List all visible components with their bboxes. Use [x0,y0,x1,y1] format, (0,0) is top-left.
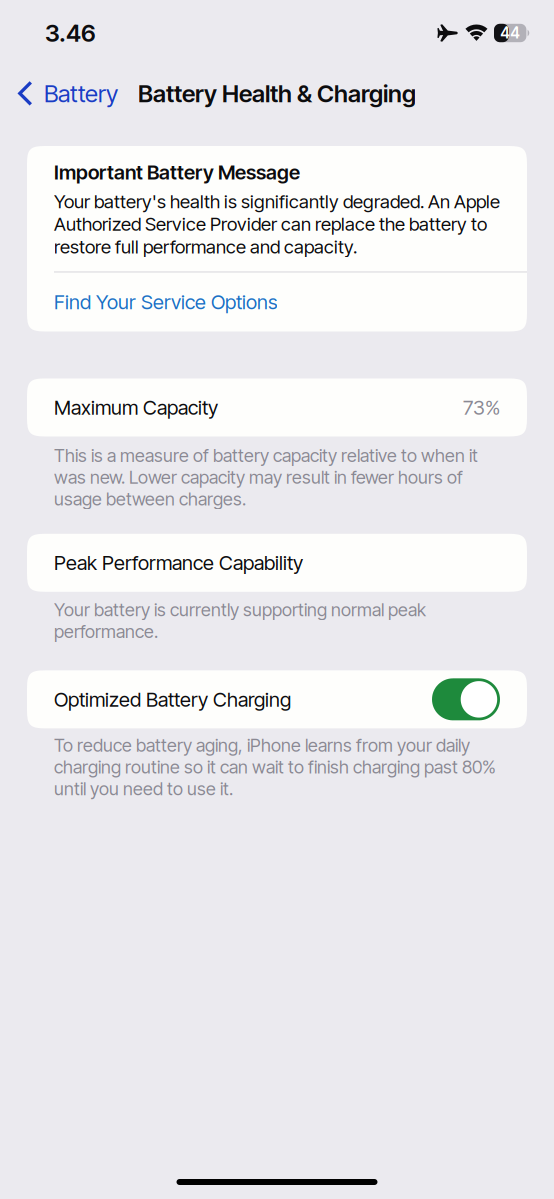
staticText: To reduce battery aging, iPhone learns f… [54,734,496,800]
button[interactable]: Battery [0,66,128,121]
staticText: Optimized Battery Charging [54,687,291,711]
staticText: This is a measure of battery capacity re… [54,444,478,510]
button[interactable]: Find Your Service Options [27,272,527,331]
staticText: Your battery's health is significantly d… [54,190,500,258]
staticText: 3.46 [45,18,96,47]
staticText: Battery [44,79,118,108]
button[interactable]: Optimized Battery Charging [432,678,500,720]
staticText: Find Your Service Options [54,290,278,314]
staticText: Maximum Capacity [54,395,218,420]
staticText: Battery Health & Charging [138,79,416,108]
staticText: Your battery is currently supporting nor… [54,599,426,642]
staticText: Peak Performance Capability [54,551,303,575]
staticText: 73% [463,395,500,420]
staticText: Important Battery Message [54,160,300,184]
button[interactable]: Peak Performance Capability [27,534,527,592]
staticText: 44 [500,24,520,42]
